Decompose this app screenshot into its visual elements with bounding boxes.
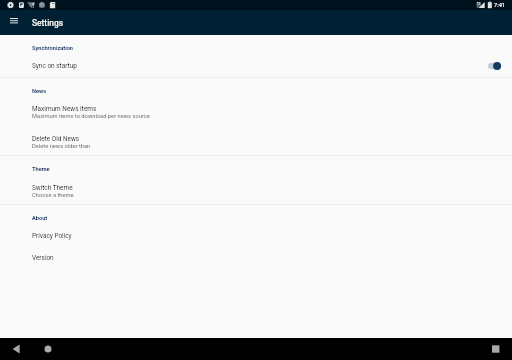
button[interactable]: Open navigation menu [3,10,25,35]
button[interactable]: Back [5,338,27,360]
button[interactable]: Version [0,249,512,267]
staticText: 7:41 [494,2,506,9]
staticText: Privacy Policy [32,232,72,240]
staticText: About [32,215,48,222]
staticText: Maximum items to download per news sourc… [32,113,150,120]
staticText: Switch Theme [32,184,73,192]
staticText: Delete news older than [32,143,91,150]
button[interactable]: Privacy Policy [0,227,512,245]
button[interactable]: Maximum News Items [0,101,512,121]
staticText: Choose a theme [32,192,74,199]
staticText: Theme [32,166,50,173]
staticText: Synchronization [32,45,74,52]
staticText: News [32,88,47,95]
button[interactable]: Switch Theme [0,180,512,200]
staticText: Settings [32,18,64,28]
button[interactable]: Recent apps [485,338,507,360]
button[interactable]: Home [36,338,58,360]
staticText: Version [32,254,54,262]
staticText: Sync on startup [32,62,77,70]
staticText: Delete Old News [32,135,80,143]
button[interactable]: Delete Old News [0,131,512,151]
button[interactable]: Sync on startup [0,57,512,75]
staticText: Maximum News Items [32,105,97,113]
